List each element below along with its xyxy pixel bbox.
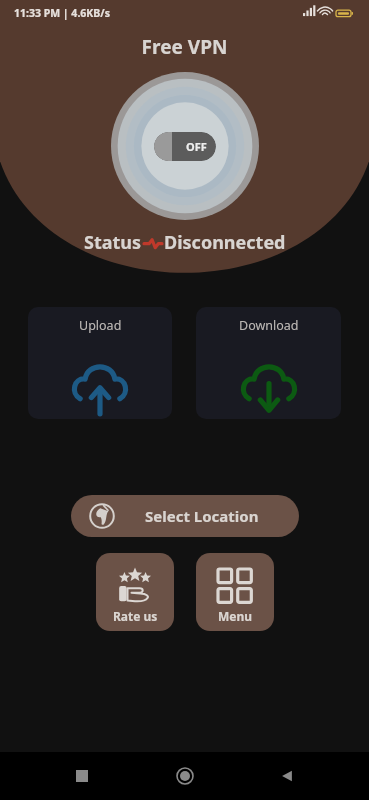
staticText: Upload bbox=[79, 317, 122, 334]
button[interactable]: Download bbox=[196, 307, 341, 419]
staticText: Free VPN bbox=[0, 34, 369, 60]
button[interactable]: Home bbox=[165, 756, 205, 796]
button[interactable]: Back bbox=[267, 756, 307, 796]
button[interactable]: Upload bbox=[28, 307, 172, 419]
staticText: Disconnected bbox=[164, 230, 286, 255]
button[interactable]: Select Location bbox=[71, 495, 299, 537]
staticText: Rate us bbox=[113, 608, 158, 624]
staticText: Select Location bbox=[145, 506, 259, 526]
staticText: OFF bbox=[186, 139, 207, 154]
staticText: Menu bbox=[218, 608, 253, 624]
staticText: Download bbox=[239, 317, 299, 334]
button[interactable]: Power toggle, off bbox=[111, 72, 259, 220]
button[interactable]: Menu bbox=[196, 553, 274, 631]
button[interactable]: Recent apps bbox=[62, 756, 102, 796]
staticText: 11:33 PM | 4.6KB/s bbox=[14, 6, 110, 20]
staticText: Status bbox=[84, 230, 142, 255]
button[interactable]: Rate us bbox=[96, 553, 174, 631]
